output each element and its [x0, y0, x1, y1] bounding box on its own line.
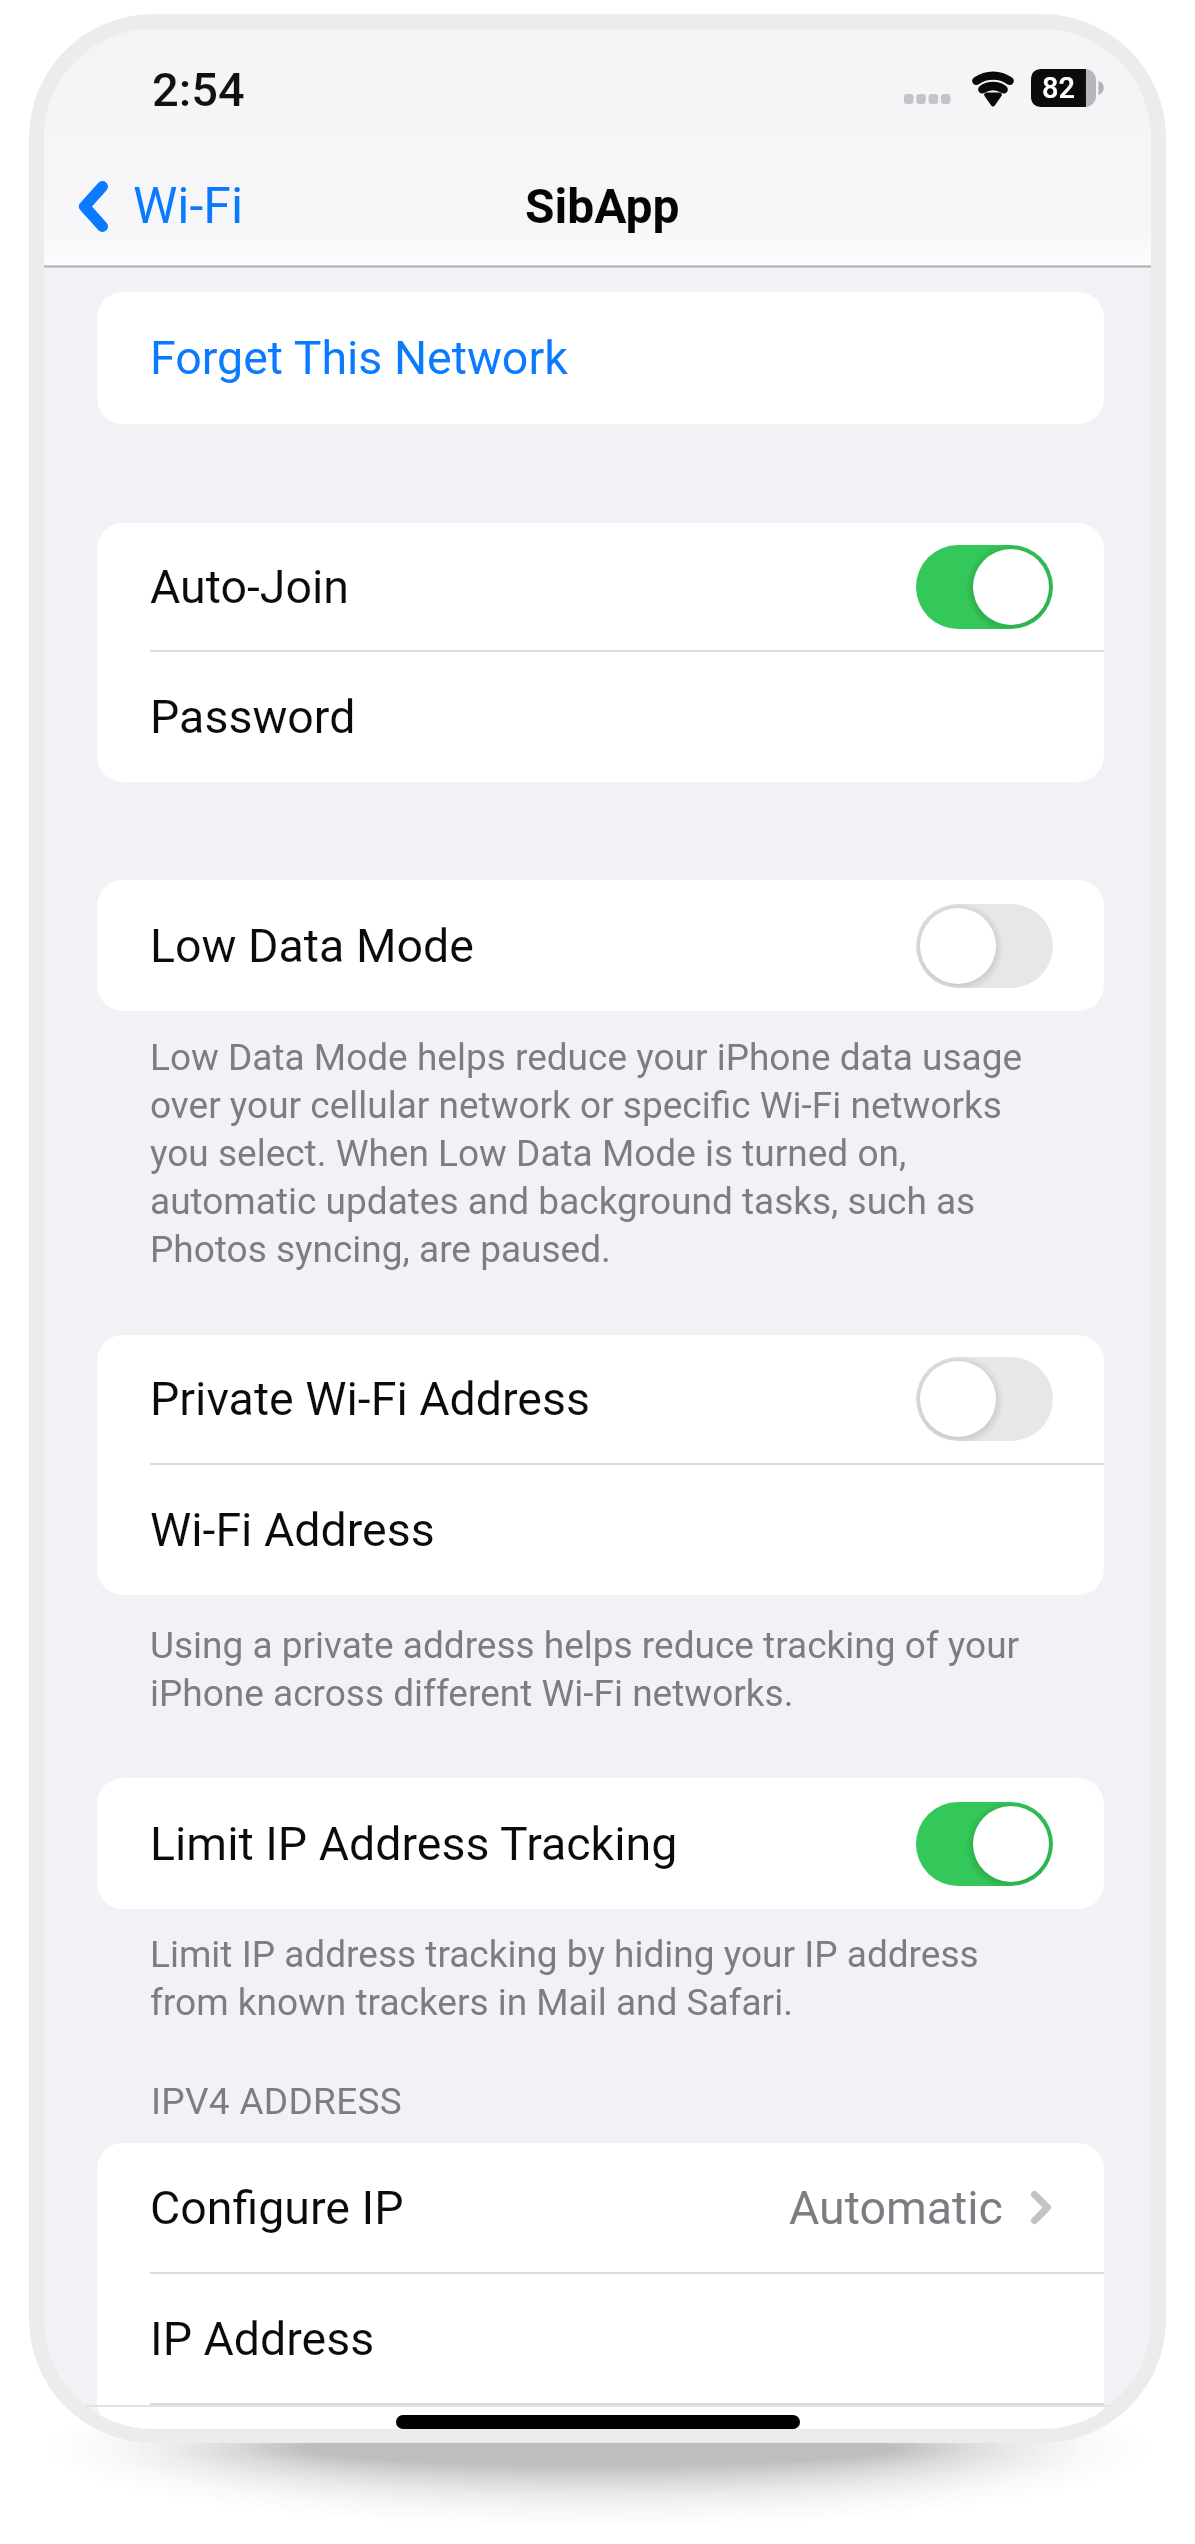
staticText: Low Data Mode [150, 919, 474, 973]
other: On [916, 545, 1053, 629]
staticText: Using a private address helps reduce tra… [150, 1624, 1040, 1715]
staticText: 82 [1042, 71, 1075, 105]
other: Wi-Fi [969, 69, 1017, 107]
staticText: Configure IP [150, 2181, 404, 2235]
staticText: Automatic [789, 2181, 1003, 2235]
staticText: IP Address [150, 2312, 375, 2366]
staticText: Wi-Fi Address [150, 1503, 435, 1557]
button[interactable]: Configure IP [97, 2143, 1104, 2272]
staticText: Auto-Join [150, 560, 350, 614]
other: Off [916, 904, 1053, 988]
button[interactable]: Private Wi-Fi Address [97, 1335, 1104, 1463]
staticText: SibApp [525, 178, 680, 234]
other: On [916, 1802, 1053, 1886]
staticText: IPV4 ADDRESS [151, 2080, 403, 2123]
button[interactable]: Password [97, 652, 1104, 782]
other: Battery 82 percent [1031, 69, 1109, 108]
staticText: Limit IP address tracking by hiding your… [150, 1933, 1030, 2024]
staticText: 2:54 [152, 62, 245, 117]
staticText: Wi-Fi [133, 177, 244, 236]
staticText: Forget This Network [150, 331, 568, 385]
staticText: Limit IP Address Tracking [150, 1817, 678, 1871]
button[interactable]: IP Address [97, 2274, 1104, 2403]
button[interactable]: Forget This Network [97, 292, 1104, 424]
other: Off [916, 1357, 1053, 1441]
button[interactable]: Wi-Fi [72, 166, 244, 246]
staticText: Private Wi-Fi Address [150, 1372, 591, 1426]
button[interactable]: Limit IP Address Tracking [97, 1778, 1104, 1909]
staticText: Low Data Mode helps reduce your iPhone d… [150, 1036, 1030, 1271]
button[interactable]: Low Data Mode [97, 880, 1104, 1011]
staticText: Password [150, 690, 356, 744]
button[interactable]: Wi-Fi Address [97, 1465, 1104, 1595]
button[interactable]: Auto-Join [97, 523, 1104, 650]
